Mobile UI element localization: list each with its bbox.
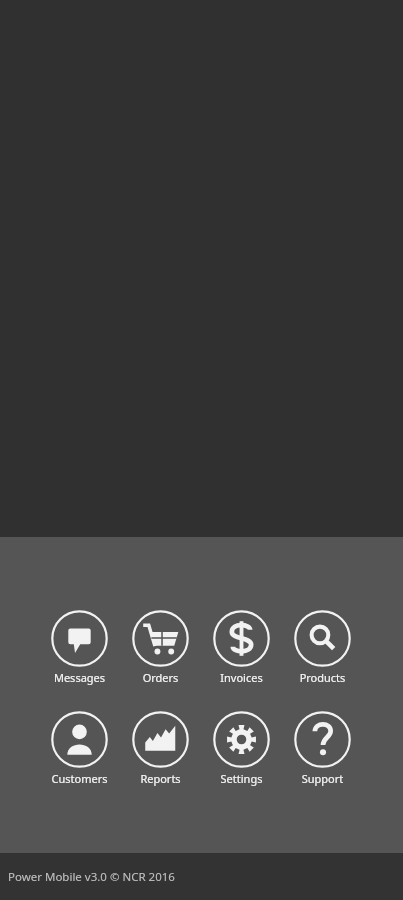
other: Orders [132, 610, 189, 667]
staticText: Customers [51, 771, 108, 786]
staticText: Invoices [213, 670, 270, 685]
other: Reports [132, 711, 189, 768]
other: Settings [213, 711, 270, 768]
other: Products [294, 610, 351, 667]
button[interactable]: Products [294, 610, 351, 685]
other: Customers [51, 711, 108, 768]
staticText: Power Mobile v3.0 © NCR 2016 [8, 869, 175, 885]
button[interactable]: Settings [213, 711, 270, 786]
button[interactable]: Support [294, 711, 351, 786]
staticText: Products [294, 670, 351, 685]
other: Support [294, 711, 351, 768]
staticText: Support [294, 771, 351, 786]
staticText: Reports [132, 771, 189, 786]
button[interactable]: Invoices [213, 610, 270, 685]
button[interactable]: Orders [132, 610, 189, 685]
other: Messages [51, 610, 108, 667]
staticText: Orders [132, 670, 189, 685]
other: Invoices [213, 610, 270, 667]
button[interactable]: Reports [132, 711, 189, 786]
button[interactable]: Customers [51, 711, 108, 786]
staticText: Messages [51, 670, 108, 685]
staticText: Settings [213, 771, 270, 786]
button[interactable]: Messages [51, 610, 108, 685]
